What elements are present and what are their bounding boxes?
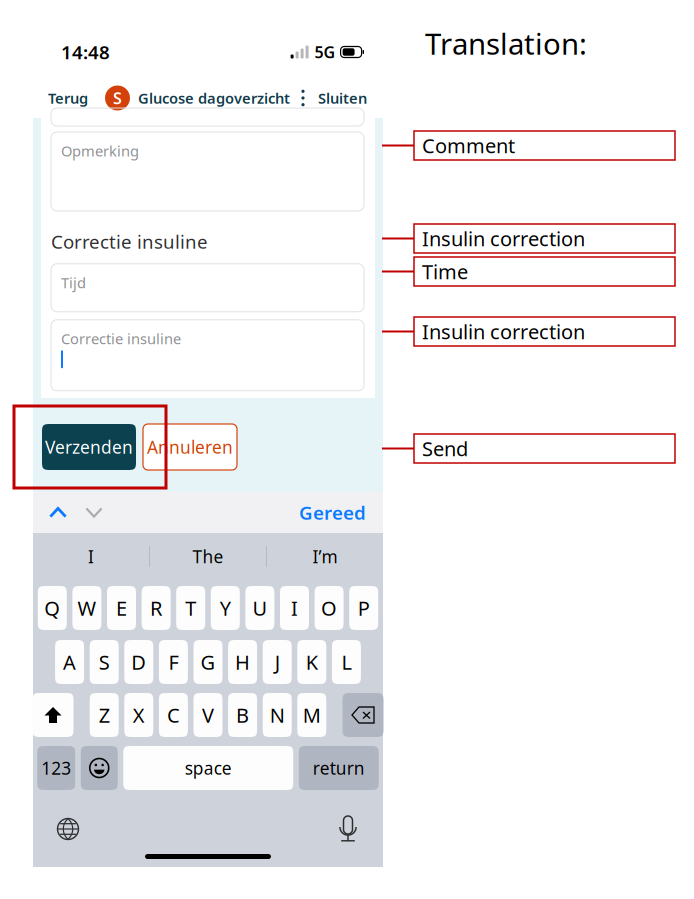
staticText: E — [116, 595, 127, 621]
button[interactable]: Dicteren — [331, 815, 365, 843]
staticText: space — [185, 756, 232, 779]
staticText: Z — [99, 702, 110, 728]
button[interactable]: Shift — [32, 693, 73, 737]
staticText: S — [99, 649, 110, 675]
staticText: A — [63, 649, 76, 675]
staticText: Opmerking — [61, 141, 139, 160]
button[interactable]: Gereed — [299, 492, 366, 533]
button[interactable]: 123 — [37, 746, 75, 790]
staticText: K — [306, 649, 318, 675]
button[interactable]: space — [123, 746, 293, 790]
staticText: W — [77, 595, 96, 621]
button[interactable]: A — [55, 640, 84, 684]
button[interactable]: W — [72, 586, 101, 630]
staticText: Sluiten — [318, 88, 367, 108]
staticText: Correctie insuline — [51, 229, 208, 254]
button[interactable]: S — [90, 640, 119, 684]
button[interactable]: F — [159, 640, 188, 684]
staticText: Verzenden — [45, 435, 133, 458]
staticText: O — [321, 595, 337, 621]
staticText: Correctie insuline — [61, 329, 181, 348]
button[interactable]: P — [349, 586, 378, 630]
staticText: H — [235, 649, 250, 675]
staticText: Terug — [48, 88, 88, 108]
staticText: 14:48 — [61, 40, 110, 64]
button[interactable]: Sluiten — [318, 79, 367, 117]
button[interactable]: U — [245, 586, 274, 630]
button[interactable]: Z — [90, 693, 119, 737]
button[interactable]: H — [228, 640, 257, 684]
staticText: Time — [422, 258, 468, 285]
staticText: M — [303, 702, 321, 728]
button[interactable]: I’m — [267, 533, 383, 580]
staticText: 123 — [41, 756, 71, 779]
staticText: Glucose dagoverzicht — [138, 88, 290, 108]
button[interactable]: Q — [38, 586, 67, 630]
button[interactable]: return — [299, 746, 379, 790]
staticText: T — [185, 595, 196, 621]
button[interactable]: Volgende veld — [85, 492, 103, 533]
staticText: S — [113, 87, 122, 109]
button[interactable]: J — [263, 640, 292, 684]
button[interactable]: B — [228, 693, 257, 737]
button[interactable]: Wissen — [342, 693, 383, 737]
staticText: Q — [44, 595, 60, 621]
button[interactable]: G — [193, 640, 222, 684]
staticText: Y — [220, 595, 231, 621]
button[interactable]: Emoji — [81, 746, 118, 790]
staticText: R — [150, 595, 162, 621]
button[interactable]: T — [176, 586, 205, 630]
staticText: P — [358, 595, 370, 621]
staticText: Insulin correction — [422, 318, 585, 345]
staticText: N — [270, 702, 285, 728]
staticText: Tijd — [61, 273, 86, 292]
staticText: I — [291, 595, 298, 621]
staticText: Comment — [422, 132, 515, 159]
staticText: Send — [422, 435, 468, 462]
button[interactable]: K — [297, 640, 326, 684]
button[interactable]: E — [107, 586, 136, 630]
staticText: Annuleren — [147, 435, 233, 458]
button[interactable]: I — [33, 533, 149, 580]
button[interactable]: D — [124, 640, 153, 684]
staticText: 5G — [315, 41, 336, 63]
staticText: D — [131, 649, 146, 675]
button[interactable]: Terug — [48, 79, 88, 117]
button[interactable]: C — [159, 693, 188, 737]
staticText: C — [167, 702, 180, 728]
staticText: I — [88, 545, 94, 568]
button[interactable]: O — [315, 586, 344, 630]
button[interactable]: Taal wijzigen — [51, 815, 85, 843]
staticText: return — [313, 756, 365, 779]
button[interactable]: I — [280, 586, 309, 630]
staticText: The — [192, 545, 223, 568]
button[interactable]: Meer opties — [297, 83, 309, 113]
staticText: V — [202, 702, 214, 728]
button[interactable]: N — [263, 693, 292, 737]
button[interactable]: Vorige veld — [49, 492, 67, 533]
staticText: U — [252, 595, 267, 621]
button[interactable]: X — [124, 693, 153, 737]
staticText: G — [200, 649, 215, 675]
staticText: Translation: — [425, 24, 587, 63]
button[interactable]: V — [193, 693, 222, 737]
button[interactable]: Verzenden — [42, 424, 136, 470]
staticText: B — [236, 702, 249, 728]
button[interactable]: Annuleren — [143, 424, 237, 470]
button[interactable]: Y — [211, 586, 240, 630]
staticText: I’m — [312, 545, 337, 568]
staticText: J — [275, 649, 280, 675]
staticText: Gereed — [299, 500, 366, 525]
button[interactable]: R — [142, 586, 171, 630]
staticText: Insulin correction — [422, 225, 585, 252]
staticText: L — [341, 649, 351, 675]
staticText: F — [168, 649, 178, 675]
button[interactable]: L — [332, 640, 361, 684]
staticText: X — [133, 702, 145, 728]
button[interactable]: M — [297, 693, 326, 737]
button[interactable]: The — [150, 533, 266, 580]
